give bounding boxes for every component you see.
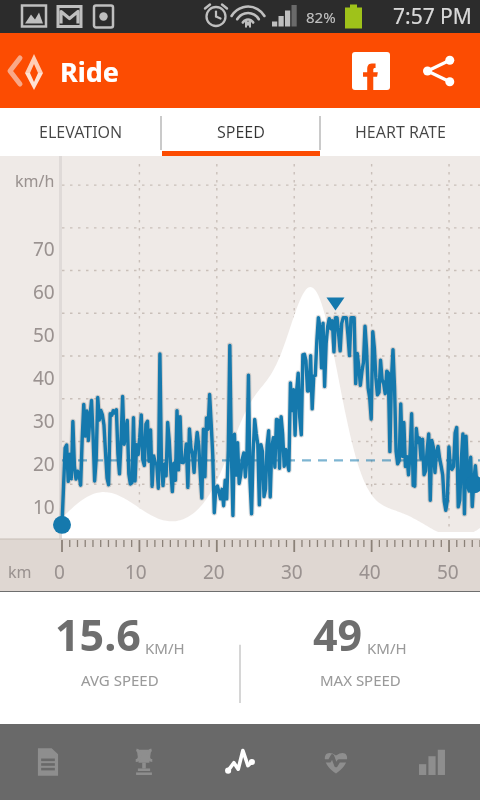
button[interactable]: Share xyxy=(412,44,466,98)
staticText: 82% xyxy=(306,7,336,27)
staticText: KM/H xyxy=(367,638,407,658)
staticText: 49 xyxy=(313,605,363,664)
staticText: 30 xyxy=(33,408,55,434)
staticText: 10 xyxy=(125,559,147,585)
button[interactable]: ELEVATION xyxy=(0,108,161,156)
staticText: 0 xyxy=(54,559,65,585)
button[interactable]: Analysis xyxy=(192,724,288,800)
button[interactable]: Share to Facebook xyxy=(344,44,398,98)
staticText: 60 xyxy=(33,279,55,305)
button[interactable]: HEART RATE xyxy=(320,108,480,156)
button[interactable]: SPEED xyxy=(161,108,320,156)
button[interactable]: 49 xyxy=(240,591,480,703)
button[interactable]: Ride xyxy=(0,40,127,102)
staticText: Ride xyxy=(60,53,119,90)
button[interactable]: 15.6 xyxy=(0,591,240,703)
staticText: km/h xyxy=(15,170,55,192)
button[interactable]: Stats xyxy=(384,724,480,800)
staticText: HEART RATE xyxy=(355,121,446,143)
button[interactable]: Heart rate xyxy=(288,724,384,800)
button[interactable]: Activity details xyxy=(0,724,96,800)
staticText: 50 xyxy=(33,322,55,348)
staticText: 40 xyxy=(359,559,381,585)
staticText: km xyxy=(8,561,32,583)
staticText: 40 xyxy=(33,365,55,391)
staticText: AVG SPEED xyxy=(81,670,159,690)
staticText: 20 xyxy=(33,451,55,477)
staticText: 10 xyxy=(33,494,55,520)
staticText: 15.6 xyxy=(55,605,141,664)
button[interactable]: Achievements xyxy=(96,724,192,800)
staticText: 20 xyxy=(203,559,225,585)
staticText: SPEED xyxy=(217,121,265,143)
staticText: ELEVATION xyxy=(39,121,123,143)
staticText: 7:57 PM xyxy=(393,2,472,31)
staticText: KM/H xyxy=(145,638,185,658)
staticText: 30 xyxy=(281,559,303,585)
staticText: MAX SPEED xyxy=(320,670,401,690)
staticText: 70 xyxy=(33,236,55,262)
staticText: 50 xyxy=(437,559,459,585)
